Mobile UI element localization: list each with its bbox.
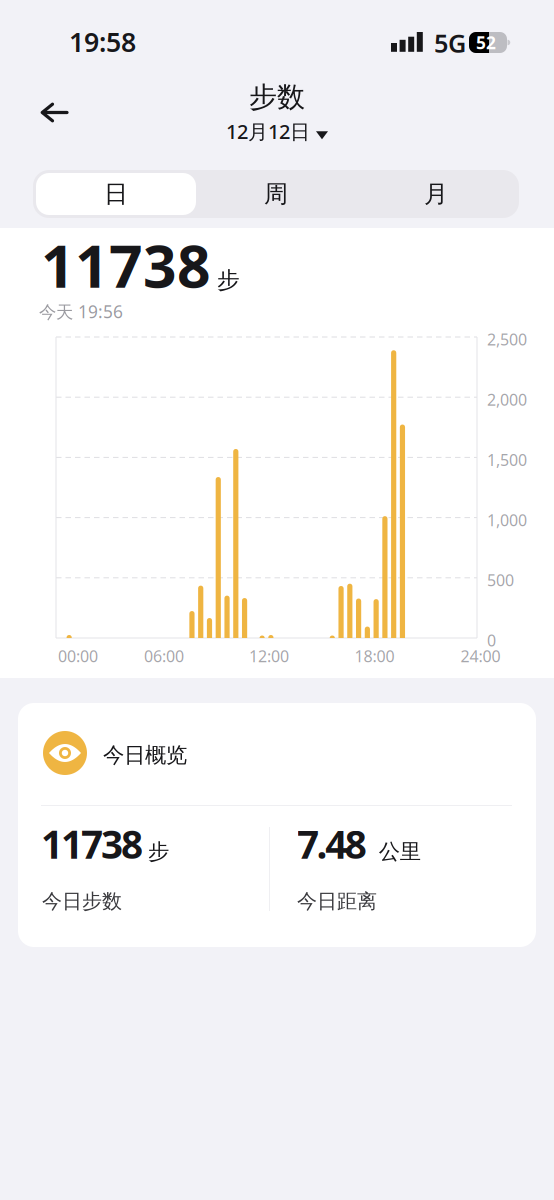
staticText: 52 bbox=[476, 31, 496, 54]
staticText: 19:58 bbox=[69, 24, 136, 59]
staticText: 今日距离 bbox=[297, 889, 377, 914]
staticText: 12:00 bbox=[249, 645, 289, 667]
staticText: 12月12日 bbox=[226, 118, 310, 145]
staticText: 2,500 bbox=[487, 329, 527, 350]
staticText: 24:00 bbox=[460, 645, 500, 667]
staticText: 7.48 bbox=[297, 818, 367, 869]
staticText: 周 bbox=[264, 179, 288, 209]
button[interactable]: 返回 bbox=[36, 102, 70, 123]
staticText: 1,000 bbox=[487, 509, 527, 530]
button[interactable]: 选择日期 bbox=[226, 118, 328, 145]
staticText: 0 bbox=[487, 630, 496, 651]
staticText: 今天 19:56 bbox=[39, 300, 123, 323]
staticText: 5G bbox=[434, 26, 466, 60]
staticText: 1,500 bbox=[487, 449, 527, 470]
staticText: 11738 bbox=[41, 818, 143, 869]
staticText: 月 bbox=[424, 179, 448, 209]
staticText: 11738 bbox=[41, 226, 211, 304]
staticText: 500 bbox=[487, 569, 514, 591]
staticText: 今日概览 bbox=[103, 742, 187, 768]
staticText: 今日步数 bbox=[42, 889, 122, 914]
staticText: 2,000 bbox=[487, 389, 527, 410]
button[interactable]: 周 bbox=[196, 173, 356, 215]
button[interactable]: 日 bbox=[36, 173, 196, 215]
staticText: 公里 bbox=[379, 838, 421, 865]
staticText: 步数 bbox=[249, 80, 305, 114]
staticText: 06:00 bbox=[144, 645, 184, 667]
staticText: 18:00 bbox=[354, 645, 394, 667]
staticText: 步 bbox=[148, 838, 169, 865]
staticText: 日 bbox=[104, 179, 128, 209]
staticText: 00:00 bbox=[58, 645, 98, 667]
button[interactable]: 月 bbox=[356, 173, 516, 215]
staticText: 步 bbox=[217, 266, 240, 294]
